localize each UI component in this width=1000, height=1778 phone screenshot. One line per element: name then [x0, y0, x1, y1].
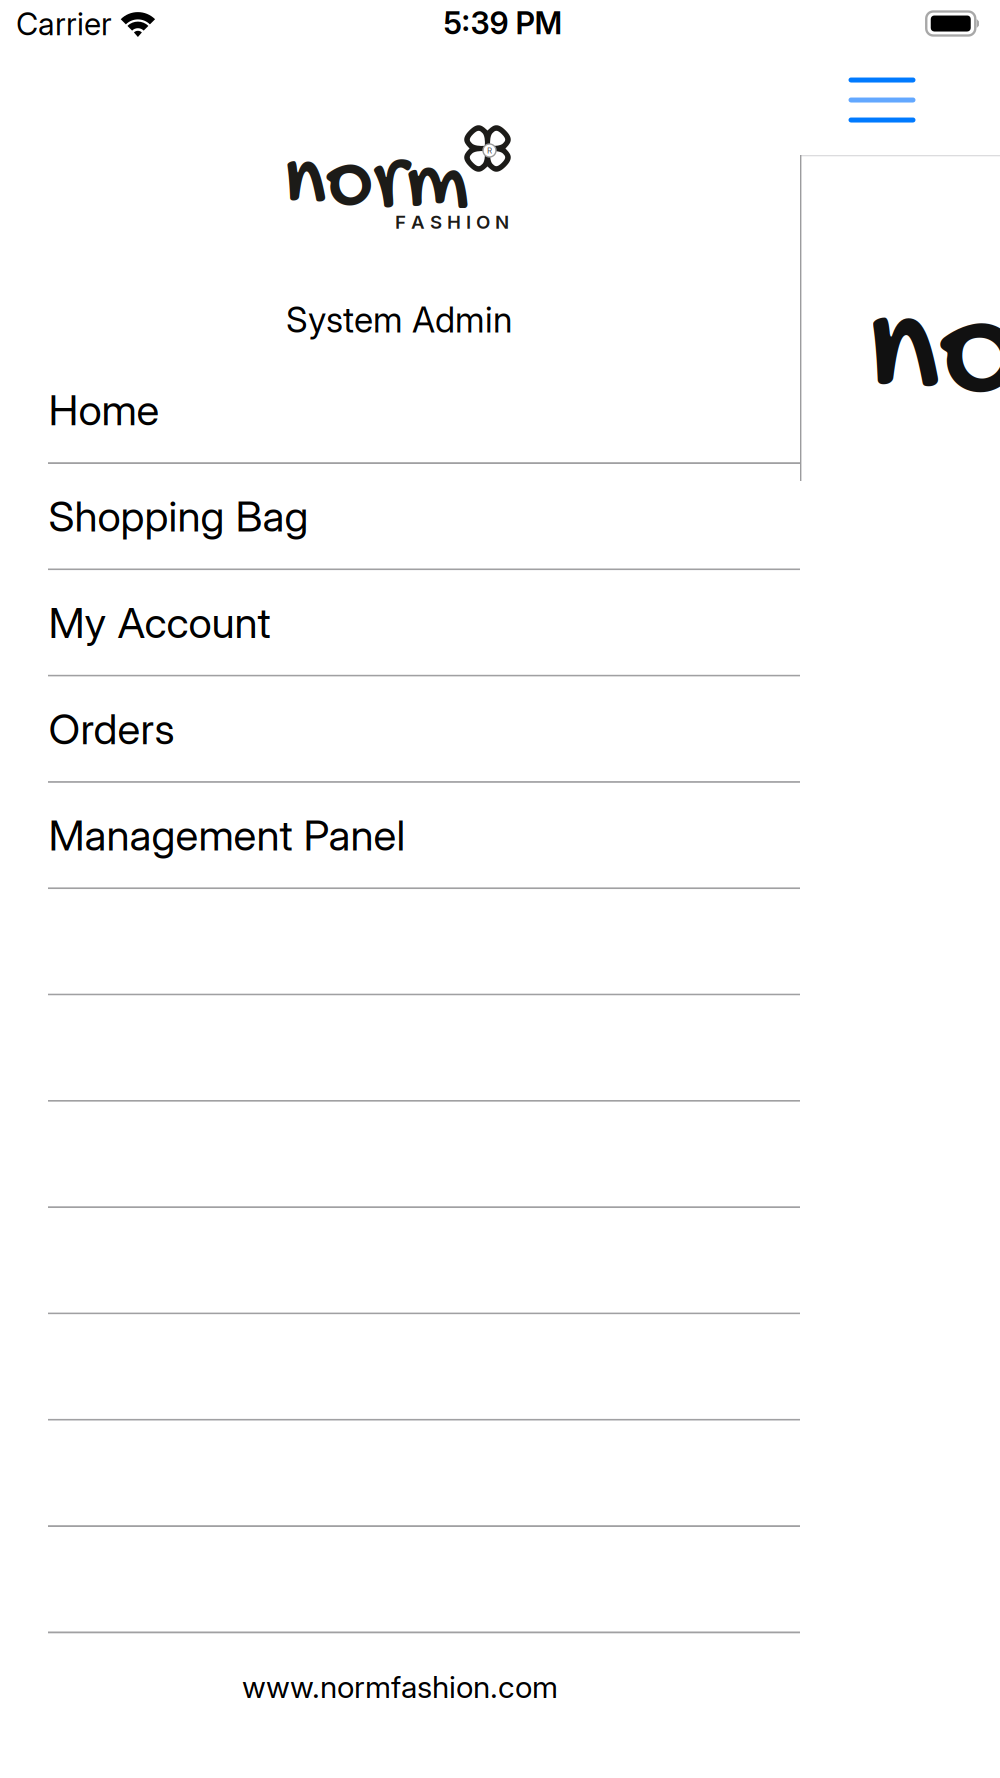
- button[interactable]: My Account: [0, 570, 800, 675]
- staticText: System Admin: [286, 299, 512, 341]
- staticText: My Account: [48, 597, 270, 648]
- staticText: R: [487, 146, 492, 155]
- button[interactable]: Management Panel: [0, 783, 800, 887]
- staticText: Home: [48, 384, 159, 435]
- staticText: 5:39 PM: [443, 4, 562, 41]
- staticText: Carrier: [16, 5, 112, 42]
- staticText: F A S H I O N: [395, 211, 509, 233]
- button[interactable]: Home: [0, 358, 800, 462]
- staticText: no: [865, 265, 1000, 449]
- staticText: Orders: [48, 703, 174, 754]
- button[interactable]: Close menu: [832, 58, 932, 142]
- staticText: Management Panel: [48, 810, 405, 861]
- button[interactable]: Orders: [0, 677, 800, 781]
- staticText: www.normfashion.com: [242, 1669, 558, 1705]
- staticText: norm: [283, 132, 469, 238]
- button[interactable]: Shopping Bag: [0, 464, 800, 568]
- staticText: Shopping Bag: [48, 491, 308, 542]
